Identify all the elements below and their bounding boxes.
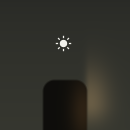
button[interactable]: Brightness level [43,80,87,130]
button[interactable]: Brightness [54,34,72,52]
